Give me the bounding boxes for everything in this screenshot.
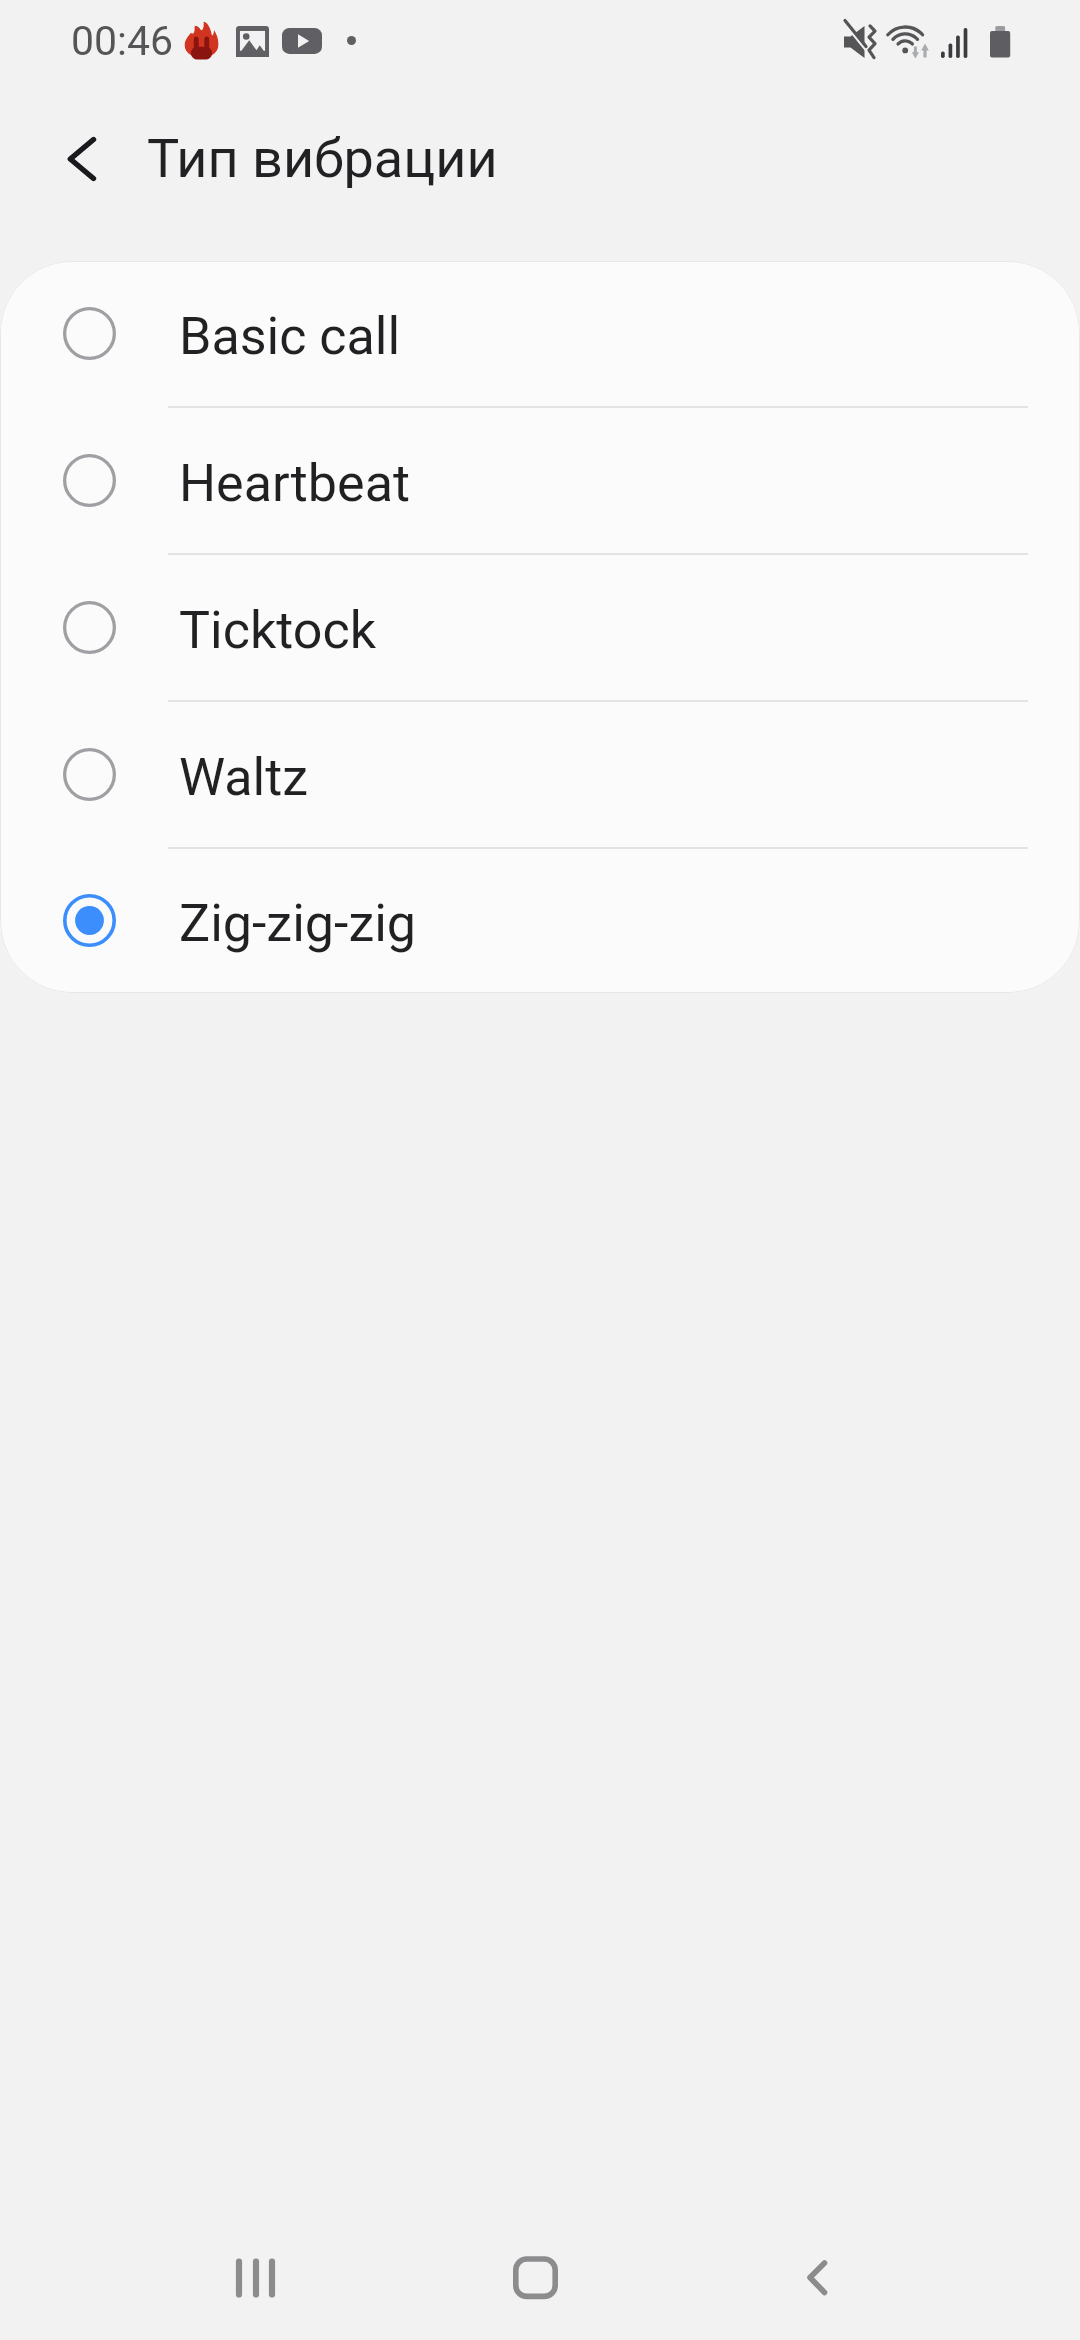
button[interactable]: Zig-zig-zig	[0, 849, 1080, 993]
staticText: Zig-zig-zig	[179, 893, 417, 954]
staticText: Basic call	[179, 306, 401, 367]
button[interactable]: Heartbeat	[0, 408, 1080, 555]
button[interactable]: Назад	[758, 2239, 878, 2319]
staticText: Ticktock	[179, 600, 376, 661]
staticText: 00:46	[71, 17, 174, 65]
button[interactable]: Waltz	[0, 702, 1080, 849]
staticText: Waltz	[179, 747, 309, 808]
staticText: Heartbeat	[179, 453, 410, 514]
button[interactable]: Ticktock	[0, 555, 1080, 702]
button[interactable]: Недавние приложения	[194, 2238, 314, 2318]
button[interactable]: Basic call	[0, 261, 1080, 408]
staticText: Тип вибрации	[147, 127, 498, 190]
button[interactable]: Главный экран	[476, 2239, 596, 2319]
button[interactable]: Назад	[36, 121, 106, 191]
